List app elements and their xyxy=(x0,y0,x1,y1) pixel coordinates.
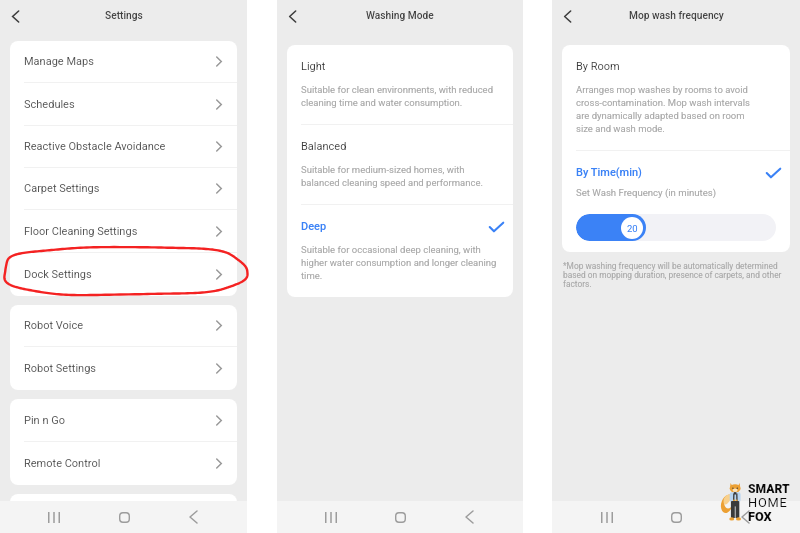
button[interactable]: By Room xyxy=(562,45,790,151)
button[interactable]: Robot Voice xyxy=(10,305,237,346)
button[interactable]: By Time(min) xyxy=(562,151,790,252)
staticText: Balanced xyxy=(301,140,347,153)
staticText: Floor Cleaning Settings xyxy=(24,225,138,238)
button[interactable]: Pin n Go xyxy=(10,399,237,441)
staticText: Carpet Settings xyxy=(24,182,100,195)
button[interactable]: Floor Cleaning Settings xyxy=(10,210,237,252)
staticText: Set Wash Frequency (in minutes) xyxy=(576,187,717,198)
staticText: Mop wash frequency xyxy=(629,10,724,22)
staticText: Light xyxy=(301,60,326,73)
staticText: SMART xyxy=(748,482,790,496)
button[interactable]: Recent apps xyxy=(315,501,347,533)
staticText: Dock Settings xyxy=(24,268,92,281)
staticText: Deep xyxy=(301,220,327,233)
staticText: Arranges mop washes by rooms to avoid cr… xyxy=(576,83,760,135)
button[interactable]: Balanced xyxy=(287,125,513,205)
staticText: Schedules xyxy=(24,98,75,111)
button[interactable]: Back xyxy=(729,501,761,533)
button[interactable]: Reactive Obstacle Avoidance xyxy=(10,126,237,167)
staticText: Robot Voice xyxy=(24,319,84,332)
button[interactable]: Back xyxy=(556,4,580,28)
button[interactable]: Manage Maps xyxy=(10,41,237,82)
button[interactable]: Carpet Settings xyxy=(10,168,237,209)
staticText: Manage Maps xyxy=(24,55,94,68)
staticText: Reactive Obstacle Avoidance xyxy=(24,140,166,153)
button[interactable]: Recent apps xyxy=(591,501,623,533)
staticText: HOME xyxy=(748,495,788,510)
button[interactable]: Recent apps xyxy=(38,501,70,533)
staticText: *Mop washing frequency will be automatic… xyxy=(563,262,790,289)
staticText: 20 xyxy=(627,223,638,234)
staticText: Suitable for occasional deep cleaning, w… xyxy=(301,243,499,282)
button[interactable]: Back xyxy=(177,501,209,533)
staticText: FOX xyxy=(748,509,772,524)
staticText: Robot Settings xyxy=(24,362,96,375)
staticText: Washing Mode xyxy=(366,10,434,22)
staticText: Suitable for medium-sized homes, with ba… xyxy=(301,163,499,189)
button[interactable]: Schedules xyxy=(10,83,237,125)
button[interactable]: Back xyxy=(4,4,28,28)
staticText: Remote Control xyxy=(24,457,101,470)
button[interactable]: Home xyxy=(384,501,416,533)
button[interactable]: Deep xyxy=(287,205,513,297)
button[interactable]: Robot Settings xyxy=(10,347,237,390)
button[interactable]: Home xyxy=(108,501,140,533)
button[interactable]: Back xyxy=(281,4,305,28)
button[interactable]: Home xyxy=(660,501,692,533)
staticText: Pin n Go xyxy=(24,414,65,427)
staticText: Settings xyxy=(105,10,143,22)
button[interactable]: Remote Control xyxy=(10,442,237,485)
staticText: By Time(min) xyxy=(576,166,642,179)
button[interactable]: Dock Settings xyxy=(10,253,237,296)
staticText: By Room xyxy=(576,60,620,73)
staticText: Suitable for clean environments, with re… xyxy=(301,83,499,109)
button[interactable]: 20 xyxy=(576,214,776,241)
button[interactable]: Light xyxy=(287,45,513,125)
button[interactable]: Back xyxy=(453,501,485,533)
